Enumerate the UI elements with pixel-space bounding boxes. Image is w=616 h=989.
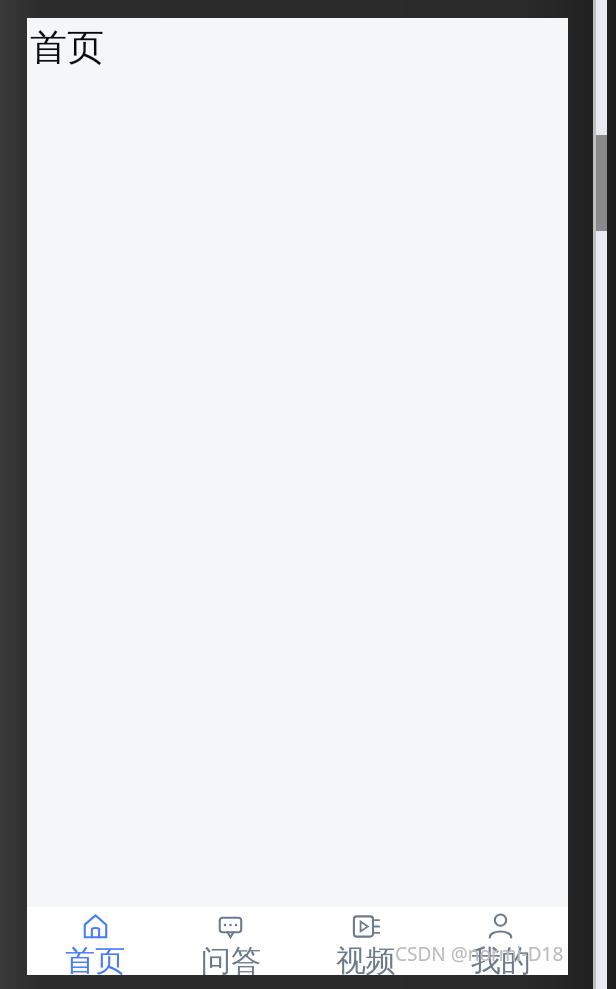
staticText: 视频: [336, 942, 396, 975]
button[interactable]: 视频: [298, 907, 433, 975]
staticText: 首页: [30, 24, 104, 71]
staticText: 首页: [65, 942, 125, 975]
staticText: CSDN @normi-D18: [395, 941, 564, 967]
staticText: 问答: [201, 942, 261, 975]
button[interactable]: 我的: [433, 907, 568, 975]
button[interactable]: 首页: [27, 907, 163, 975]
staticText: 我的: [471, 942, 531, 975]
button[interactable]: 问答: [163, 907, 298, 975]
